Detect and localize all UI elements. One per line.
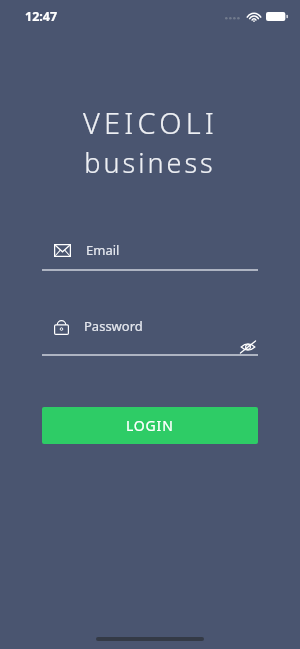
button[interactable]: Email — [42, 236, 258, 264]
staticText: business — [84, 144, 216, 181]
staticText: Email — [86, 241, 120, 259]
button[interactable]: LOGIN — [42, 407, 258, 444]
staticText: 12:47 — [25, 8, 58, 25]
button[interactable]: Show password — [238, 340, 258, 354]
staticText: VEICOLI — [83, 103, 218, 142]
button[interactable]: Password — [42, 312, 258, 340]
staticText: LOGIN — [126, 416, 174, 435]
staticText: Password — [84, 317, 143, 335]
